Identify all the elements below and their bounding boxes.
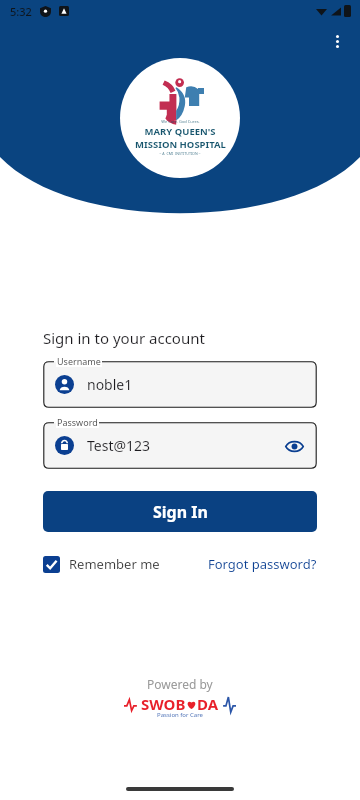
staticText: Username bbox=[57, 355, 101, 367]
staticText: noble1 bbox=[87, 375, 306, 394]
staticText: Remember me bbox=[69, 555, 160, 573]
staticText: Powered by bbox=[147, 676, 213, 692]
button[interactable]: More options bbox=[320, 24, 354, 58]
button[interactable]: Password bbox=[43, 422, 317, 469]
staticText: DA bbox=[197, 694, 219, 714]
button[interactable]: Show password bbox=[282, 434, 306, 458]
staticText: Passion for Care bbox=[157, 711, 203, 719]
button[interactable]: Username bbox=[43, 361, 317, 408]
button[interactable]: Remember me bbox=[43, 555, 160, 573]
staticText: 5:32 bbox=[10, 4, 32, 19]
staticText: We Care. God Cures. bbox=[161, 119, 200, 124]
staticText: SWOB bbox=[141, 694, 186, 714]
staticText: MISSION HOSPITAL bbox=[135, 138, 226, 151]
staticText: ~ A CMI INSTITUTION ~ bbox=[159, 151, 201, 156]
staticText: MARY QUEEN'S bbox=[144, 125, 216, 138]
staticText: Sign in to your account bbox=[43, 328, 205, 348]
staticText: Forgot password? bbox=[208, 555, 317, 573]
staticText: Sign In bbox=[153, 501, 208, 523]
button[interactable]: Sign In bbox=[43, 491, 317, 532]
staticText: Password bbox=[57, 416, 98, 428]
button[interactable]: Forgot password? bbox=[208, 555, 317, 573]
staticText: Test@123 bbox=[87, 436, 282, 455]
